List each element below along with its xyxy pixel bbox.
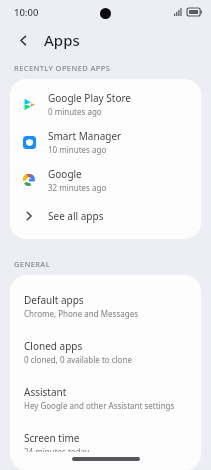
staticText: Google — [48, 167, 82, 181]
staticText: 0 minutes ago — [48, 106, 102, 117]
staticText: RECENTLY OPENED APPS — [14, 63, 111, 73]
button[interactable]: Default apps — [10, 283, 201, 329]
staticText: Google Play Store — [48, 91, 132, 105]
button[interactable]: Smart Manager — [10, 123, 201, 161]
staticText: Chrome, Phone and Messages — [24, 308, 138, 319]
staticText: Hey Google and other Assistant settings — [24, 400, 175, 411]
staticText: 24 minutes today — [24, 446, 90, 452]
button[interactable]: Google Play Store — [10, 85, 201, 123]
staticText: 10:00 — [14, 6, 39, 19]
staticText: 0 cloned, 0 available to clone — [24, 354, 132, 365]
staticText: See all apps — [48, 209, 104, 223]
button[interactable]: Cloned apps — [10, 329, 201, 375]
staticText: Cloned apps — [24, 339, 83, 353]
staticText: Assistant — [24, 385, 67, 399]
staticText: Default apps — [24, 293, 84, 307]
button[interactable]: Screen time — [10, 421, 201, 462]
button[interactable]: Assistant — [10, 375, 201, 421]
button[interactable]: Back — [10, 27, 36, 53]
button[interactable]: See all apps — [10, 199, 201, 233]
staticText: GENERAL — [14, 259, 51, 269]
staticText: 10 minutes ago — [48, 144, 107, 155]
staticText: 32 minutes ago — [48, 182, 107, 193]
staticText: Smart Manager — [48, 129, 122, 143]
staticText: Screen time — [24, 431, 80, 445]
button[interactable]: Google — [10, 161, 201, 199]
staticText: Apps — [44, 30, 80, 50]
